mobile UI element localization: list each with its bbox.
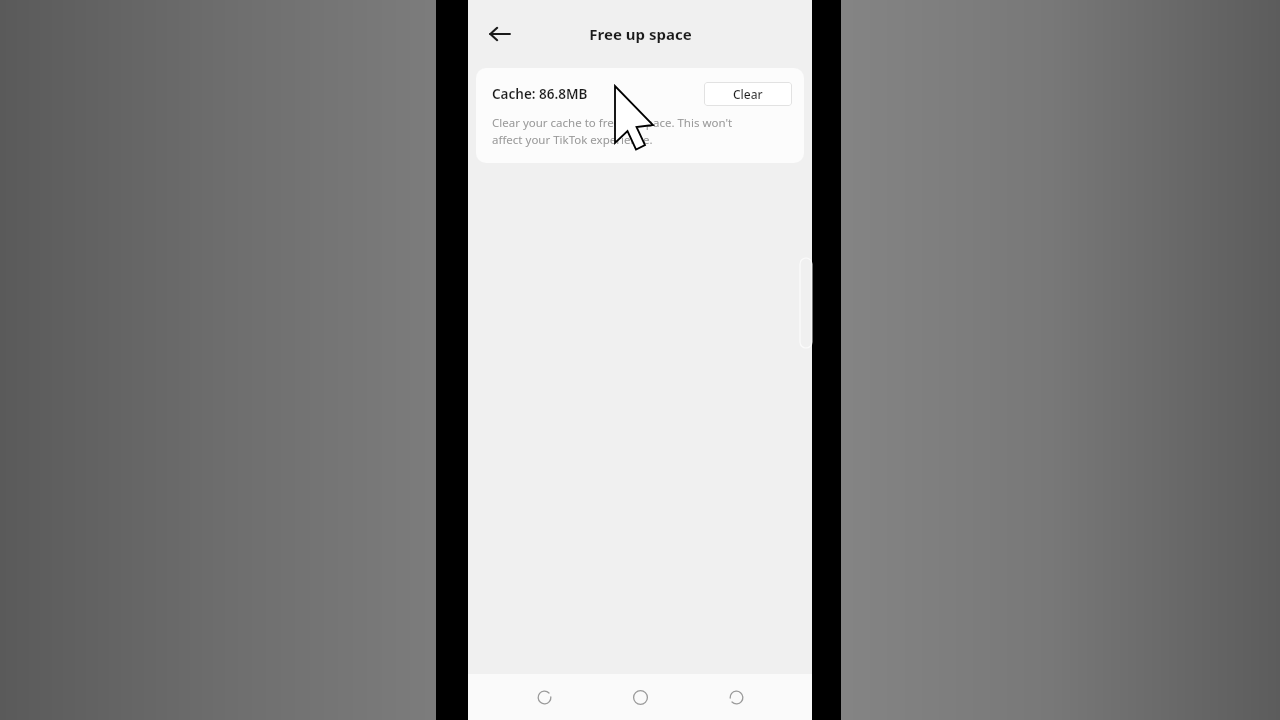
- button[interactable]: Recents: [524, 677, 564, 717]
- staticText: Clear: [733, 86, 763, 102]
- staticText: Clear your cache to free up space. This …: [492, 115, 733, 147]
- button[interactable]: Cache: 86.8MB: [476, 68, 804, 163]
- button[interactable]: Home: [620, 677, 660, 717]
- staticText: Cache: 86.8MB: [492, 85, 588, 103]
- button[interactable]: Back: [716, 677, 756, 717]
- staticText: Free up space: [589, 24, 692, 44]
- button[interactable]: Back: [478, 12, 522, 56]
- button[interactable]: Clear: [704, 82, 792, 106]
